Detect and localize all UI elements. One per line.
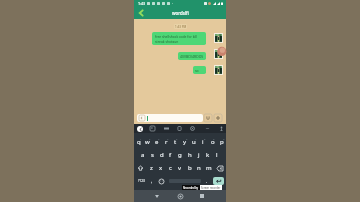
staticText: 4: [167, 137, 169, 140]
staticText: f: [169, 151, 172, 159]
button[interactable]: q: [134, 136, 143, 148]
button[interactable]: z: [147, 162, 156, 174]
staticText: o: [211, 138, 215, 146]
button[interactable]: e: [152, 136, 161, 148]
staticText: h: [188, 151, 192, 159]
staticText: d: [160, 151, 164, 159]
button[interactable]: Close toolbar: [137, 126, 143, 132]
staticText: p: [220, 138, 224, 146]
staticText: v: [178, 164, 182, 172]
staticText: 2: [149, 137, 151, 140]
button[interactable]: u: [189, 136, 198, 148]
staticText: ?123: [138, 179, 145, 183]
other: Emoji: [139, 115, 145, 121]
staticText: b: [188, 164, 192, 172]
staticText: w: [145, 138, 150, 146]
button[interactable]: a: [138, 149, 147, 161]
button[interactable]: Keyboard tool: [205, 126, 210, 131]
button[interactable]: o: [208, 136, 217, 148]
staticText: 6: [186, 137, 188, 140]
button[interactable]: Keyboard tool: [164, 126, 169, 131]
staticText: 40VBCJJ4RDQS: [180, 54, 204, 58]
staticText: Recorded by: [183, 186, 199, 190]
button[interactable]: 40VBCJJ4RDQS: [178, 52, 206, 60]
staticText: so yes: [195, 68, 204, 72]
button[interactable]: Shift: [136, 164, 144, 172]
staticText: c: [169, 164, 172, 172]
button[interactable]: Keyboard tool: [177, 126, 182, 131]
staticText: g: [178, 151, 182, 159]
staticText: 1:43: [138, 1, 146, 6]
staticText: s: [151, 151, 154, 159]
button[interactable]: Emoji: [158, 175, 165, 187]
staticText: n: [197, 164, 201, 172]
button[interactable]: f: [166, 149, 175, 161]
staticText: 1: [140, 137, 142, 140]
button[interactable]: b: [185, 162, 194, 174]
staticText: z: [150, 164, 153, 172]
staticText: a: [141, 151, 145, 159]
staticText: free shellshock code for kill streak sho…: [155, 34, 197, 43]
staticText: 0: [223, 137, 225, 140]
button[interactable]: free shellshock code for kill streak sho…: [152, 32, 206, 45]
button[interactable]: j: [194, 149, 203, 161]
button[interactable]: Emoji: [137, 114, 203, 122]
staticText: wordslfi: [172, 10, 189, 16]
button[interactable]: g: [175, 149, 184, 161]
staticText: i: [202, 138, 204, 146]
button[interactable]: v: [175, 162, 184, 174]
staticText: x: [159, 164, 163, 172]
button[interactable]: so yes: [193, 66, 206, 74]
staticText: 3: [158, 137, 160, 140]
staticText: e: [155, 138, 159, 146]
button[interactable]: s: [148, 149, 157, 161]
button[interactable]: l: [212, 149, 221, 161]
staticText: t: [174, 138, 177, 146]
button[interactable]: t: [171, 136, 180, 148]
button[interactable]: x: [156, 162, 165, 174]
staticText: y: [183, 138, 187, 146]
button[interactable]: k: [203, 149, 212, 161]
button[interactable]: h: [185, 149, 194, 161]
staticText: 1:43 PM: [175, 25, 187, 29]
button[interactable]: Keyboard tool: [219, 126, 224, 131]
button[interactable]: Back: [153, 192, 161, 200]
staticText: q: [137, 138, 141, 146]
staticText: .: [206, 178, 208, 184]
button[interactable]: r: [162, 136, 171, 148]
button[interactable]: y: [180, 136, 189, 148]
button[interactable]: Keyboard tool: [150, 126, 155, 131]
staticText: 9: [213, 137, 215, 140]
button[interactable]: ?123: [136, 175, 146, 187]
button[interactable]: n: [194, 162, 203, 174]
staticText: j: [198, 151, 200, 159]
staticText: ,: [151, 178, 153, 184]
button[interactable]: w: [143, 136, 152, 148]
button[interactable]: p: [217, 136, 226, 148]
staticText: Screen recorder: [201, 186, 221, 190]
staticText: 5: [176, 137, 178, 140]
button[interactable]: Enter: [213, 177, 224, 185]
button[interactable]: Home: [176, 192, 184, 200]
button[interactable]: Attach: [214, 114, 222, 122]
button[interactable]: .: [204, 175, 210, 187]
button[interactable]: m: [204, 162, 213, 174]
staticText: k: [206, 151, 210, 159]
staticText: r: [165, 138, 168, 146]
button[interactable]: ,: [148, 175, 155, 187]
staticText: 8: [204, 137, 206, 140]
staticText: 7: [195, 137, 197, 140]
button[interactable]: c: [166, 162, 175, 174]
button[interactable]: Keyboard tool: [190, 126, 195, 131]
button[interactable]: i: [198, 136, 207, 148]
button[interactable]: Backspace: [216, 164, 224, 172]
button[interactable]: Voice message: [204, 114, 212, 122]
staticText: l: [216, 151, 218, 159]
button[interactable]: Back: [135, 7, 146, 19]
staticText: m: [206, 164, 212, 172]
button[interactable]: Recents: [198, 192, 206, 200]
staticText: u: [192, 138, 196, 146]
button[interactable]: d: [157, 149, 166, 161]
